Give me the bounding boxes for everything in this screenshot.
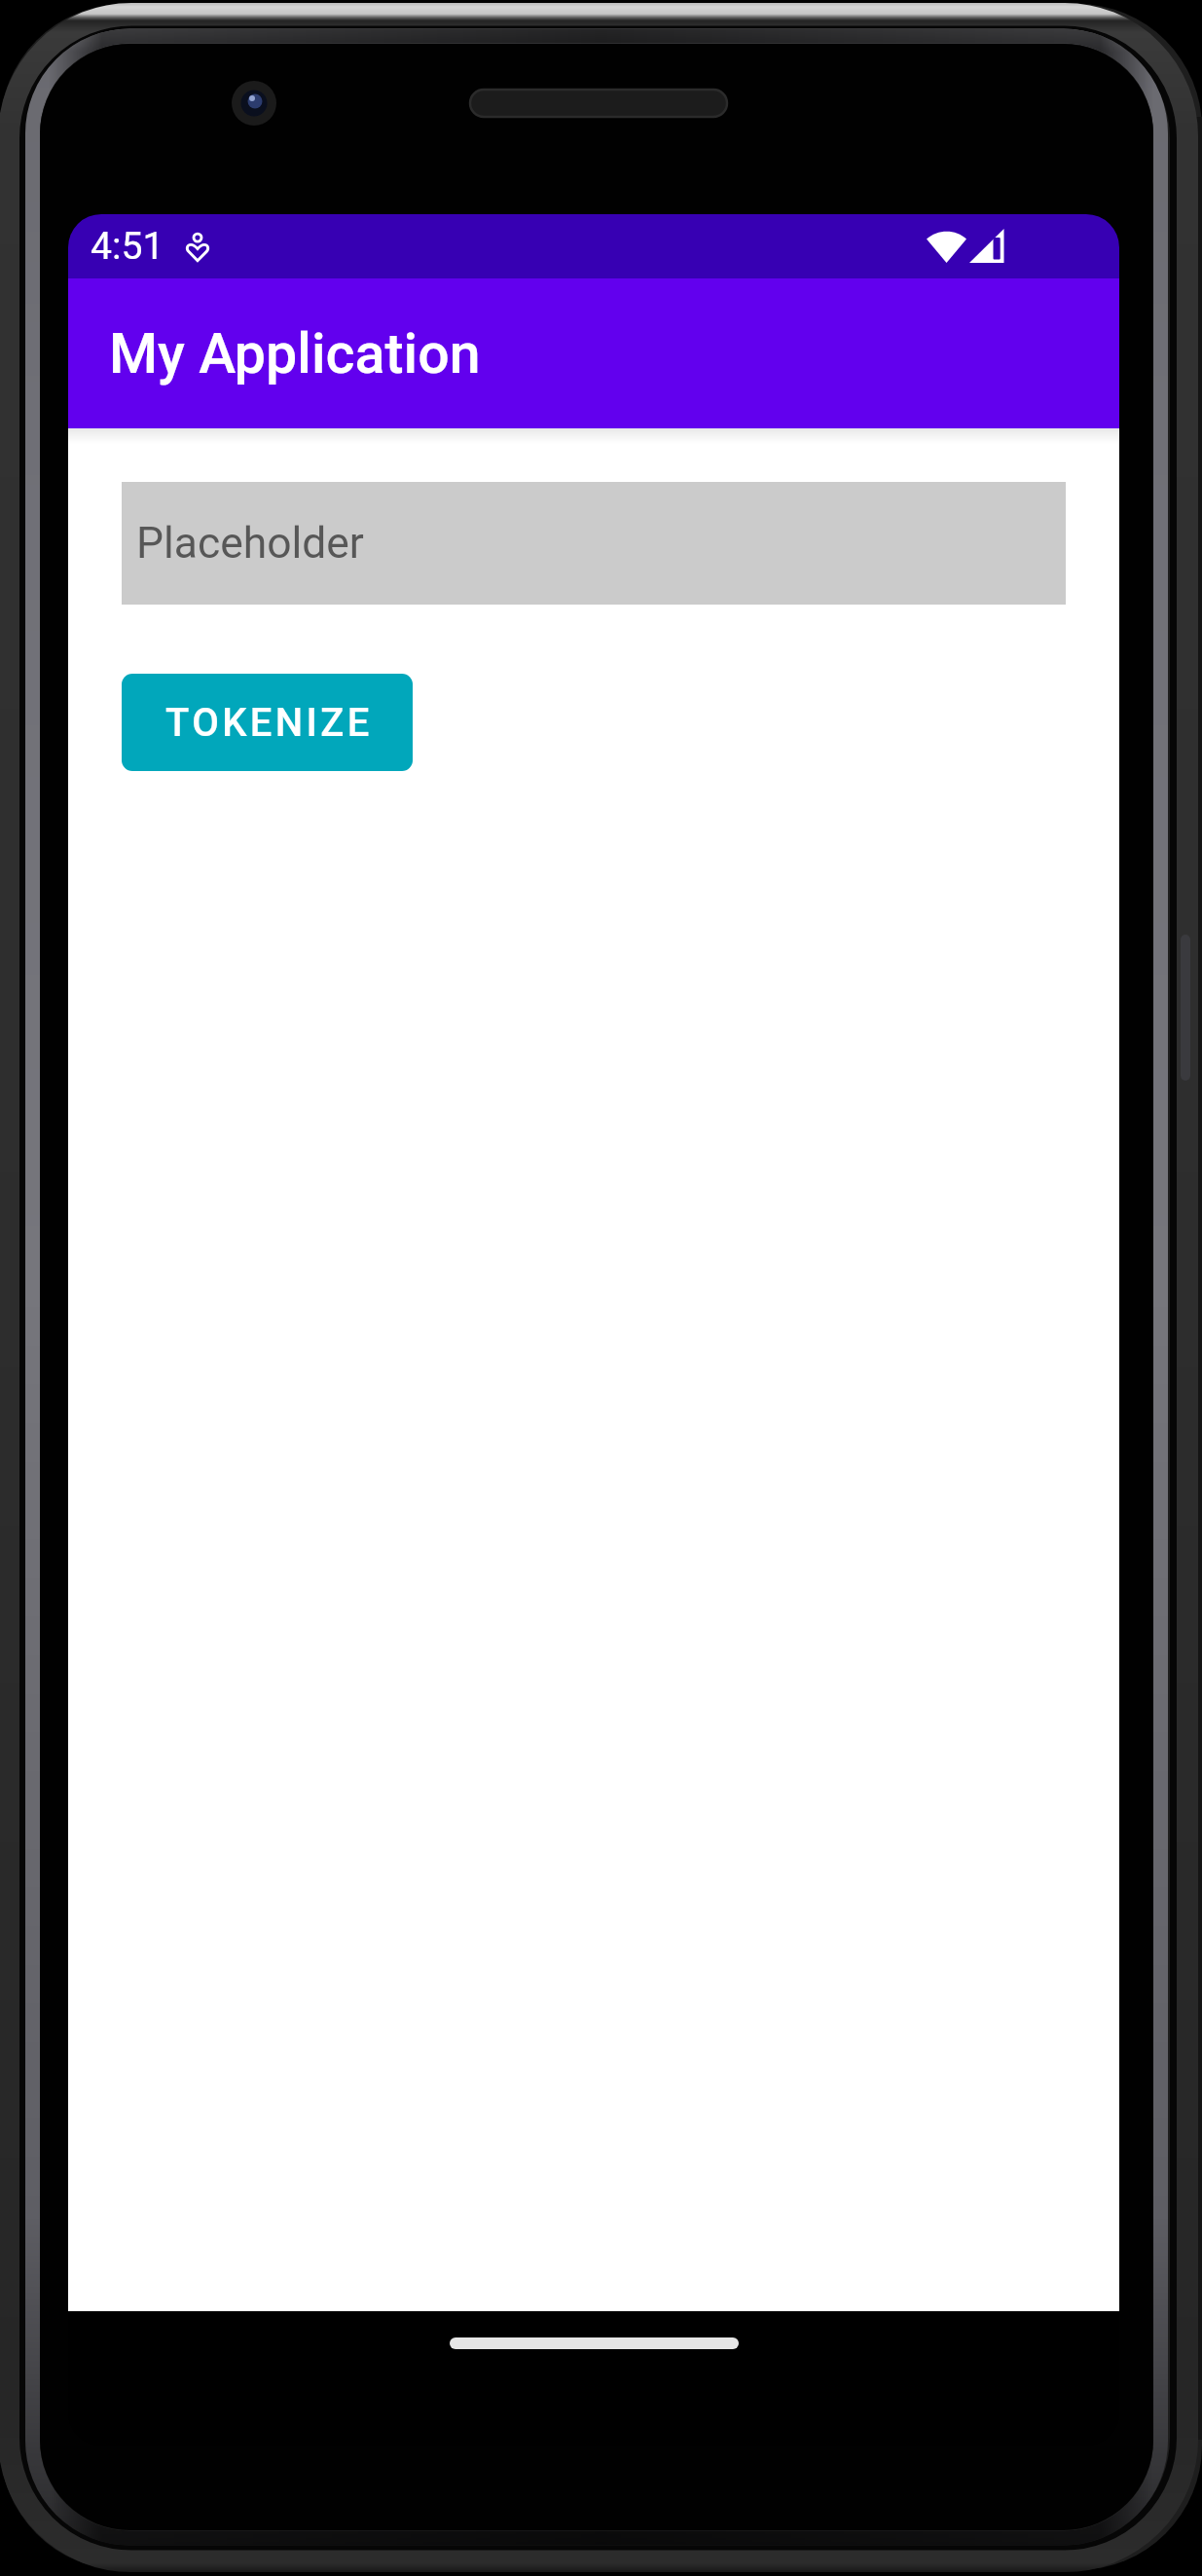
other: Wi-Fi and signal <box>927 229 1004 263</box>
staticText: TOKENIZE <box>165 700 373 746</box>
button[interactable]: TOKENIZE <box>122 674 413 771</box>
other: Notification <box>176 228 219 271</box>
staticText: 4:51 <box>91 224 164 269</box>
button[interactable]: Home <box>450 2337 739 2349</box>
staticText: Placeholder <box>136 518 364 569</box>
button[interactable]: Placeholder <box>122 482 1066 605</box>
staticText: My Application <box>109 321 481 386</box>
